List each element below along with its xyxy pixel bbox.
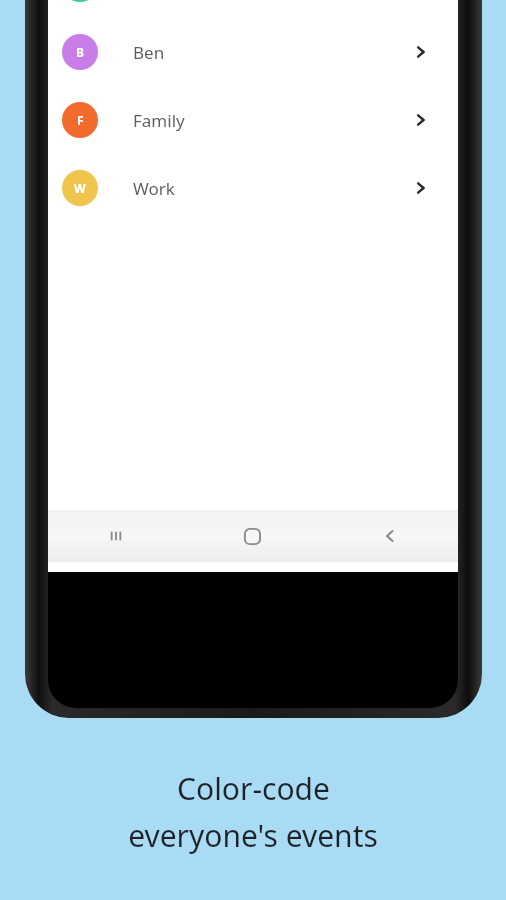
staticText: Ben xyxy=(133,41,165,64)
staticText: Work xyxy=(133,177,175,200)
button[interactable]: F xyxy=(48,102,458,138)
staticText: B xyxy=(76,44,84,60)
staticText: F xyxy=(77,112,84,128)
button[interactable]: J xyxy=(48,0,458,2)
staticText: Family xyxy=(133,109,185,132)
button[interactable]: Home xyxy=(184,510,321,562)
staticText: W xyxy=(74,180,86,196)
staticText: everyone's events xyxy=(128,815,378,856)
button[interactable]: Back xyxy=(321,510,458,562)
button[interactable]: W xyxy=(48,170,458,206)
button[interactable]: Recent apps xyxy=(48,510,184,562)
staticText: Color-code xyxy=(177,768,330,809)
button[interactable]: B xyxy=(48,34,458,70)
